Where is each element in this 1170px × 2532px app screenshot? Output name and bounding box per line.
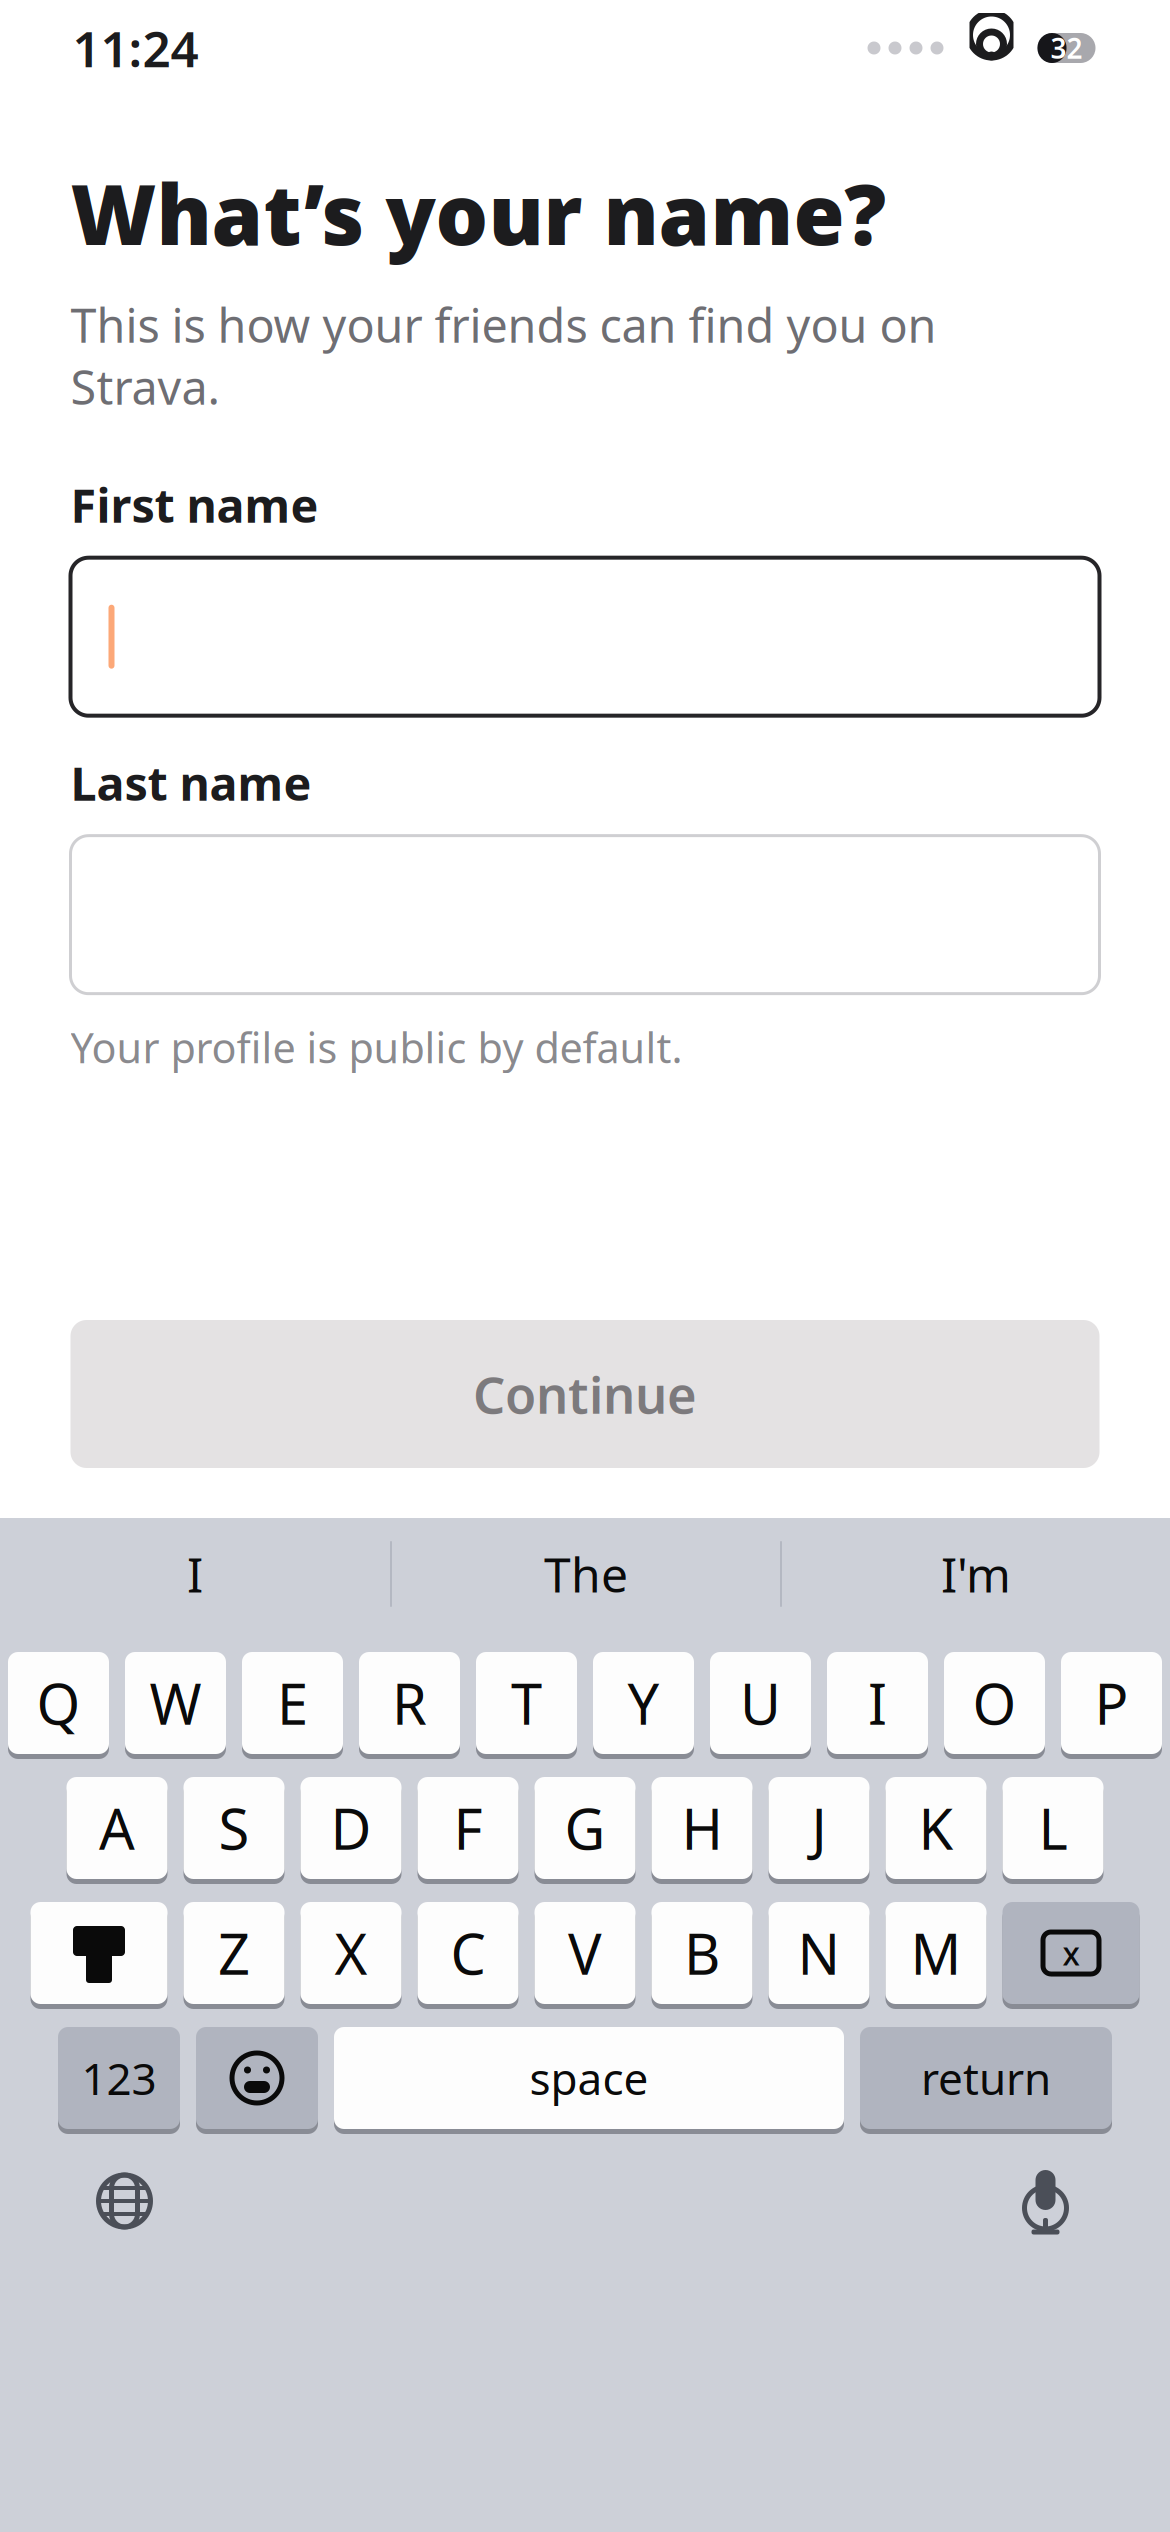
staticText: B — [684, 1916, 720, 1990]
staticText: 32 — [1050, 29, 1082, 67]
staticText: L — [1038, 1791, 1067, 1865]
staticText: M — [910, 1916, 961, 1990]
button[interactable]: T — [476, 1652, 577, 1759]
button[interactable]: Switch keyboard — [64, 2146, 184, 2256]
staticText: N — [797, 1916, 840, 1990]
button[interactable]: P — [1061, 1652, 1162, 1759]
staticText: K — [918, 1791, 953, 1865]
staticText: A — [99, 1791, 135, 1865]
button[interactable]: V — [534, 1902, 635, 2009]
staticText: return — [921, 2049, 1051, 2107]
staticText: Last name — [70, 752, 311, 814]
staticText: P — [1094, 1666, 1128, 1740]
button[interactable]: W — [125, 1652, 226, 1759]
button[interactable]: Y — [593, 1652, 694, 1759]
staticText: This is how your friends can find you on… — [70, 294, 936, 418]
button[interactable]: space — [334, 2027, 844, 2134]
button[interactable]: U — [710, 1652, 811, 1759]
staticText: The — [544, 1542, 628, 1606]
button[interactable]: B — [651, 1902, 752, 2009]
button[interactable]: Shift — [30, 1902, 167, 2009]
staticText: Y — [627, 1666, 659, 1740]
button[interactable]: I'm — [782, 1518, 1170, 1630]
staticText: F — [453, 1791, 482, 1865]
staticText: X — [334, 1916, 367, 1990]
staticText: Z — [218, 1916, 250, 1990]
button[interactable]: S — [183, 1777, 284, 1884]
button[interactable]: L — [1002, 1777, 1103, 1884]
staticText: S — [218, 1791, 249, 1865]
staticText: Continue — [473, 1360, 697, 1428]
staticText: 11:24 — [72, 15, 198, 81]
button[interactable]: X — [300, 1902, 401, 2009]
staticText: What’s your name? — [70, 158, 886, 268]
button[interactable] — [70, 558, 1099, 716]
staticText: C — [450, 1916, 485, 1990]
staticText: R — [392, 1666, 427, 1740]
button[interactable]: Delete — [1002, 1902, 1139, 2009]
staticText: First name — [70, 474, 318, 536]
staticText: H — [681, 1791, 722, 1865]
staticText: x — [1062, 1932, 1079, 1974]
staticText: D — [330, 1791, 371, 1865]
button[interactable]: K — [885, 1777, 986, 1884]
staticText: U — [740, 1666, 781, 1740]
button[interactable]: Z — [183, 1902, 284, 2009]
staticText: Q — [36, 1666, 80, 1740]
button[interactable]: Emoji — [196, 2027, 318, 2134]
button[interactable]: O — [944, 1652, 1045, 1759]
staticText: T — [511, 1666, 542, 1740]
button[interactable]: I — [827, 1652, 928, 1759]
button[interactable]: 123 — [58, 2027, 180, 2134]
button[interactable]: J — [768, 1777, 869, 1884]
staticText: V — [568, 1916, 602, 1990]
staticText: I — [868, 1666, 887, 1740]
button[interactable]: N — [768, 1902, 869, 2009]
staticText: 123 — [81, 2049, 156, 2107]
button[interactable]: M — [885, 1902, 986, 2009]
button[interactable]: C — [417, 1902, 518, 2009]
button[interactable]: Dictation — [985, 2146, 1105, 2256]
button[interactable]: Continue — [70, 1320, 1099, 1468]
button[interactable]: A — [66, 1777, 167, 1884]
button[interactable]: I — [0, 1518, 390, 1630]
staticText: I — [187, 1542, 203, 1606]
button[interactable]: return — [860, 2027, 1112, 2134]
button[interactable]: The — [392, 1518, 780, 1630]
button[interactable]: D — [300, 1777, 401, 1884]
button[interactable]: Q — [8, 1652, 109, 1759]
button[interactable]: H — [651, 1777, 752, 1884]
staticText: E — [277, 1666, 308, 1740]
button[interactable]: G — [534, 1777, 635, 1884]
staticText: I'm — [941, 1542, 1011, 1606]
staticText: O — [972, 1666, 1016, 1740]
staticText: Your profile is public by default. — [70, 1020, 682, 1075]
button[interactable]: F — [417, 1777, 518, 1884]
button[interactable] — [70, 836, 1099, 994]
button[interactable]: R — [359, 1652, 460, 1759]
staticText: G — [564, 1791, 605, 1865]
staticText: J — [811, 1791, 826, 1865]
staticText: W — [149, 1666, 201, 1740]
button[interactable]: E — [242, 1652, 343, 1759]
staticText: space — [529, 2049, 648, 2107]
